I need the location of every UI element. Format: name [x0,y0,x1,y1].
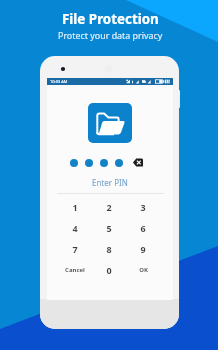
staticText: Enter PIN [92,177,128,188]
button[interactable]: 5 [92,217,126,238]
button[interactable]: Protected folder [88,103,132,143]
button[interactable]: 1 [58,196,92,217]
button[interactable]: Cancel [58,259,92,280]
button[interactable]: 2 [92,196,126,217]
staticText: Protect your data privacy [58,29,163,41]
staticText: Cancel [65,266,85,274]
button[interactable]: OK [126,259,160,280]
staticText: 0 [106,264,112,276]
staticText: 7 [72,243,78,255]
staticText: 9 [140,243,146,255]
staticText: 4 [72,222,78,234]
staticText: 5 [106,222,112,234]
staticText: 2 [106,201,112,213]
button[interactable]: 7 [58,238,92,259]
staticText: OK [139,266,148,274]
button[interactable]: 8 [92,238,126,259]
staticText: 1 [72,201,78,213]
button[interactable]: 0 [92,259,126,280]
staticText: 6 [140,222,146,234]
button[interactable]: 9 [126,238,160,259]
button[interactable]: Backspace [133,158,143,167]
staticText: 10:03 AM [50,79,68,84]
staticText: File Protection [62,10,159,28]
button[interactable]: 6 [126,217,160,238]
staticText: 3 [140,201,146,213]
staticText: 8 [106,243,112,255]
button[interactable]: 4 [58,217,92,238]
button[interactable]: 3 [126,196,160,217]
